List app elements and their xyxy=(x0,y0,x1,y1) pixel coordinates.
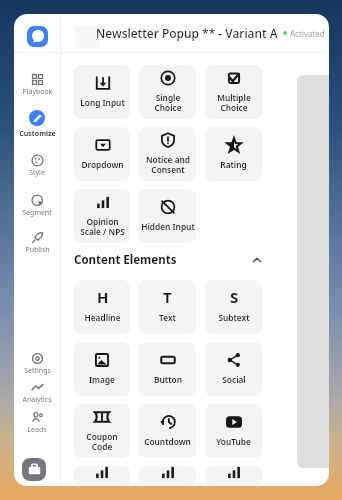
staticText: S xyxy=(230,287,239,303)
staticText: Countdown xyxy=(144,436,191,447)
staticText: Activated xyxy=(290,28,325,39)
staticText: Segment xyxy=(22,208,52,218)
staticText: Customize xyxy=(19,129,56,139)
staticText: Playbook xyxy=(22,87,53,97)
button[interactable]: T xyxy=(139,280,196,334)
staticText: Hidden Input xyxy=(141,221,195,232)
staticText: Button xyxy=(154,374,182,385)
button[interactable]: Opinion Scale / NPS xyxy=(74,189,130,243)
staticText: H xyxy=(97,287,109,303)
staticText: Headline xyxy=(84,312,121,323)
button[interactable]: Leads xyxy=(14,409,60,435)
button[interactable]: Segment xyxy=(14,192,60,218)
staticText: Image xyxy=(89,374,115,385)
staticText: Analytics xyxy=(22,395,52,405)
staticText: Long Input xyxy=(80,97,125,108)
button[interactable]: Playbook xyxy=(14,71,60,97)
button[interactable]: Countdown xyxy=(139,404,196,458)
button[interactable]: Workspace xyxy=(22,458,46,481)
staticText: Dropdown xyxy=(81,159,124,170)
button[interactable]: A xyxy=(74,466,130,486)
button[interactable]: Dropdown xyxy=(74,127,130,181)
button[interactable]: Social xyxy=(205,342,262,396)
button[interactable]: YouTube xyxy=(205,404,262,458)
staticText: Coupon Code xyxy=(86,431,118,452)
button[interactable]: Rating xyxy=(205,127,262,181)
staticText: Single Choice xyxy=(154,92,182,113)
button[interactable]: Multiple Choice xyxy=(205,65,262,119)
staticText: Newsletter Popup ** - Variant A xyxy=(96,25,278,41)
button[interactable]: Single Choice xyxy=(139,65,196,119)
staticText: T xyxy=(163,287,172,303)
button[interactable]: Coupon Code xyxy=(74,404,130,458)
button[interactable]: H xyxy=(74,280,130,334)
button[interactable]: B xyxy=(139,466,196,486)
button[interactable]: Hidden Input xyxy=(139,189,196,243)
staticText: Multiple Choice xyxy=(217,92,251,113)
staticText: Text xyxy=(159,312,176,323)
staticText: Settings xyxy=(24,366,51,376)
staticText: Publish xyxy=(25,245,50,255)
button[interactable]: Long Input xyxy=(74,65,130,119)
staticText: Style xyxy=(29,168,45,178)
staticText: YouTube xyxy=(216,436,251,447)
staticText: Notice and Consent xyxy=(146,154,190,175)
button[interactable]: Style xyxy=(14,152,60,178)
button[interactable]: Button xyxy=(139,342,196,396)
button[interactable]: Customize xyxy=(14,110,60,139)
staticText: Opinion Scale / NPS xyxy=(80,216,125,237)
button[interactable]: Content Elements xyxy=(74,250,262,270)
button[interactable]: Notice and Consent xyxy=(139,127,196,181)
button[interactable]: Analytics xyxy=(14,379,60,405)
button[interactable]: C xyxy=(205,466,262,486)
staticText: Social xyxy=(222,374,246,385)
staticText: Subtext xyxy=(218,312,250,323)
button[interactable]: S xyxy=(205,280,262,334)
staticText: Content Elements xyxy=(74,252,177,268)
button[interactable]: Settings xyxy=(14,350,60,376)
button[interactable]: Logo xyxy=(27,26,48,47)
button[interactable]: Publish xyxy=(14,229,60,255)
button[interactable]: Image xyxy=(74,342,130,396)
staticText: Leads xyxy=(27,425,47,435)
staticText: Rating xyxy=(220,159,247,170)
